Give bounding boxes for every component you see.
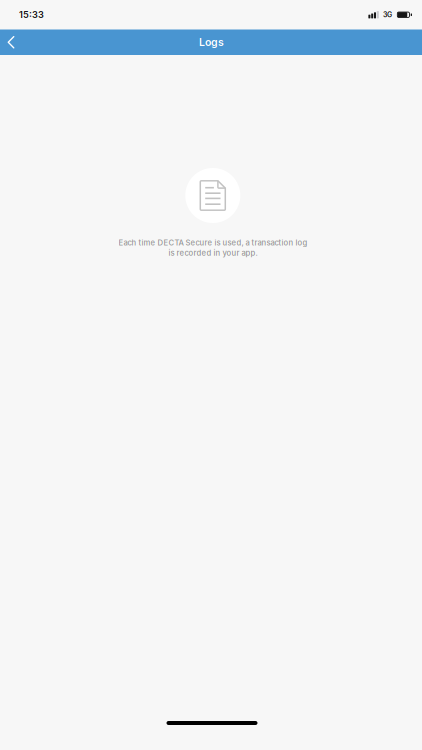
staticText: Logs (199, 36, 224, 49)
staticText: 3G (383, 11, 392, 19)
staticText: 15:33 (19, 9, 44, 20)
staticText: Each time DECTA Secure is used, a transa… (118, 238, 307, 258)
button[interactable]: Back (0, 29, 22, 55)
